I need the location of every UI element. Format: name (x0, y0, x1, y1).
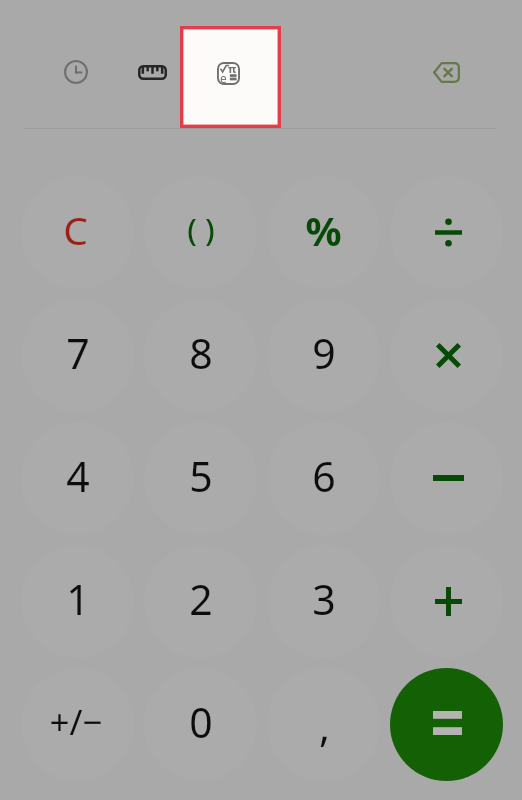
button[interactable]: 5 (144, 422, 257, 535)
staticText: 0 (189, 694, 213, 750)
staticText: , (319, 698, 330, 754)
button[interactable]: Add (390, 545, 503, 658)
button[interactable]: 7 (21, 299, 134, 412)
staticText: % (305, 203, 342, 257)
button[interactable]: Subtract (390, 422, 503, 535)
button[interactable]: 6 (267, 422, 380, 535)
button[interactable]: 9 (267, 299, 380, 412)
staticText: 3 (312, 571, 336, 627)
button[interactable]: 0 (144, 668, 257, 781)
staticText: 4 (66, 448, 90, 504)
staticText: 5 (189, 448, 213, 504)
button[interactable]: 1 (21, 545, 134, 658)
staticText: 6 (312, 448, 336, 504)
button[interactable]: 4 (21, 422, 134, 535)
button[interactable]: Equals (390, 668, 503, 781)
staticText: 7 (66, 325, 90, 381)
button[interactable]: % (267, 176, 380, 289)
button[interactable]: Multiply (390, 299, 503, 412)
staticText: 8 (189, 325, 213, 381)
button[interactable]: Scientific calculator (180, 26, 281, 128)
button[interactable]: Unit converter (128, 48, 176, 96)
staticText: e (220, 70, 227, 86)
button[interactable]: ( ) (144, 176, 257, 289)
button[interactable]: Backspace (422, 48, 470, 96)
staticText: 1 (66, 571, 90, 627)
staticText: 2 (189, 571, 213, 627)
button[interactable]: 8 (144, 299, 257, 412)
button[interactable]: C (21, 176, 134, 289)
staticText: ( ) (187, 208, 215, 250)
staticText: +/− (49, 698, 103, 746)
button[interactable]: +/− (21, 668, 134, 781)
button[interactable]: History (52, 48, 100, 96)
button[interactable]: , (267, 668, 380, 781)
staticText: π (228, 61, 237, 76)
button[interactable]: Divide (390, 176, 503, 289)
button[interactable]: 2 (144, 545, 257, 658)
staticText: C (63, 203, 88, 256)
button[interactable]: 3 (267, 545, 380, 658)
staticText: 9 (312, 325, 336, 381)
